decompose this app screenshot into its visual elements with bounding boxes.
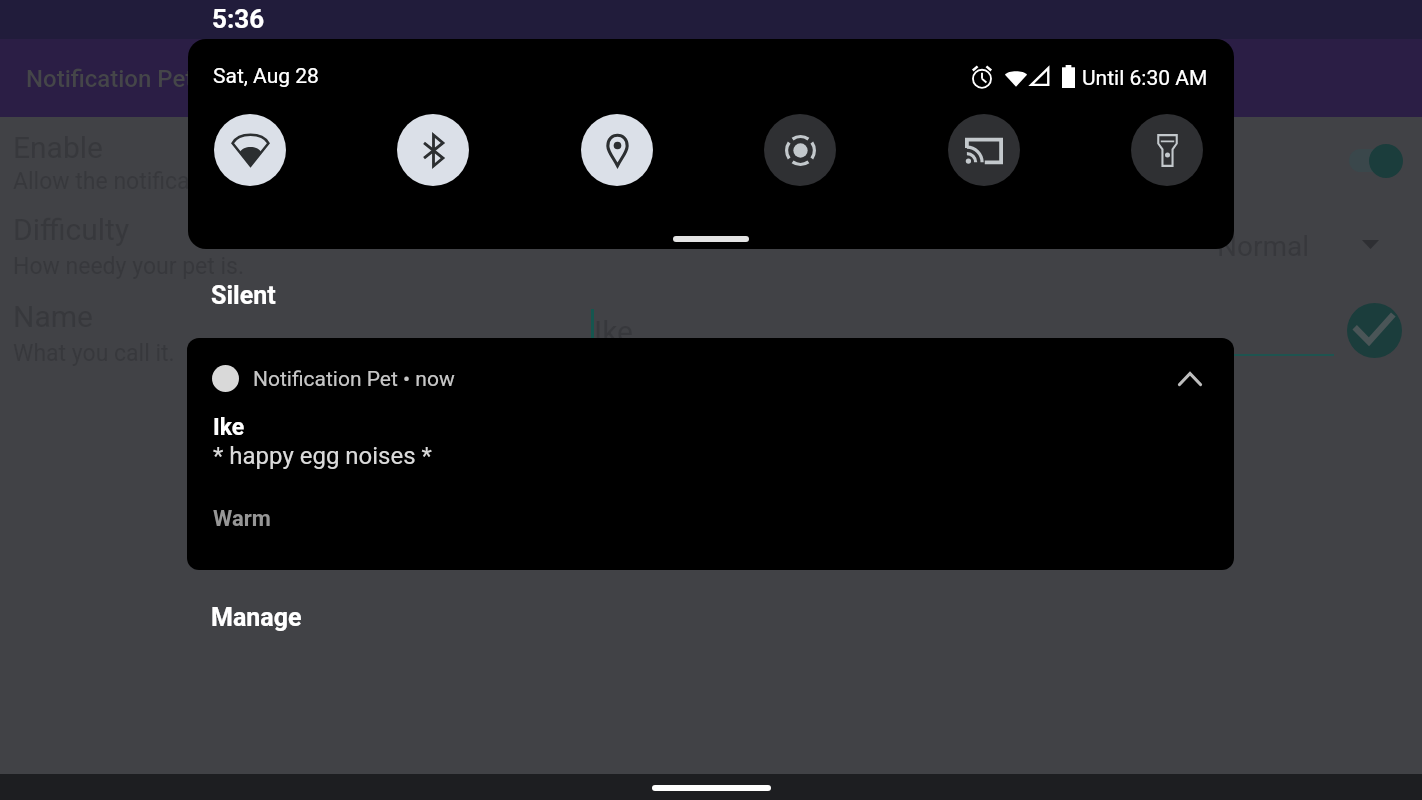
button[interactable]: Screen Cast [948, 114, 1020, 186]
staticText: Allow the notification [13, 168, 229, 195]
button[interactable]: Enable [13, 130, 103, 165]
staticText: Until 6:30 AM [1082, 66, 1208, 91]
staticText: Ike [213, 414, 245, 441]
staticText: Notification Pet • now [253, 367, 455, 392]
staticText: How needy your pet is. [13, 253, 245, 280]
button[interactable]: Location [581, 114, 653, 186]
button[interactable]: Difficulty [13, 212, 130, 247]
button[interactable]: Save [1347, 303, 1402, 358]
button[interactable]: Manage [211, 603, 302, 632]
staticText: Silent [211, 281, 276, 310]
button[interactable]: Bluetooth [397, 114, 469, 186]
button[interactable]: Normal [1217, 230, 1310, 263]
button[interactable]: Internet [214, 114, 286, 186]
staticText: Sat, Aug 28 [213, 64, 319, 89]
button[interactable]: Drag handle [673, 236, 749, 242]
button[interactable]: Flashlight [1131, 114, 1203, 186]
button[interactable]: Collapse [1168, 357, 1212, 401]
staticText: Warm [213, 506, 271, 532]
staticText: * happy egg noises * [213, 442, 432, 470]
button[interactable]: Enable toggle [1344, 143, 1406, 178]
staticText: 5:36 [212, 4, 265, 34]
button[interactable]: Name [13, 299, 93, 334]
button[interactable]: Notification Pet • now [187, 338, 1234, 570]
staticText: What you call it. [13, 340, 175, 367]
staticText: Ike [594, 314, 633, 349]
other: Expand difficulty [1362, 240, 1379, 249]
staticText: Notification Pet [26, 65, 194, 93]
button[interactable]: Do Not Disturb [764, 114, 836, 186]
